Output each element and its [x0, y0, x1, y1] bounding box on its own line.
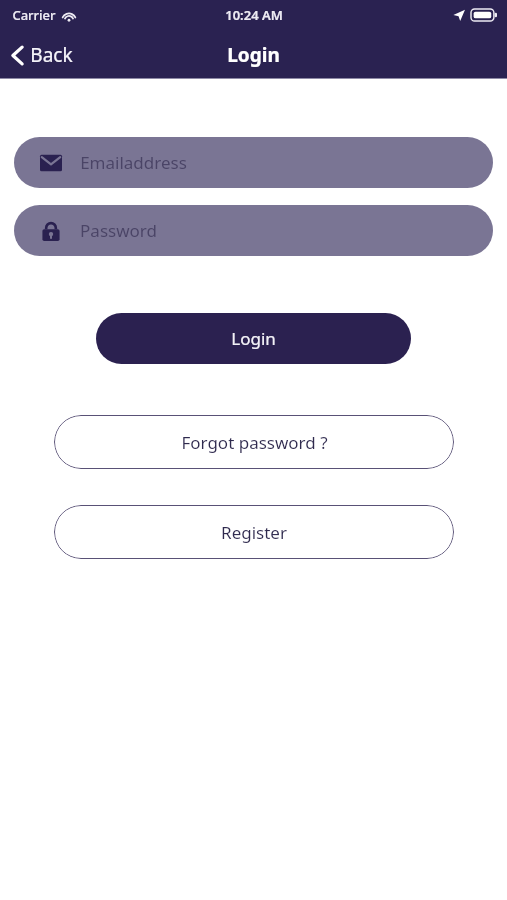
staticText: Password — [80, 219, 157, 242]
other: Email — [40, 152, 62, 174]
button[interactable]: Forgot password ? — [54, 415, 454, 469]
staticText: Carrier — [12, 6, 56, 24]
staticText: Login — [231, 327, 276, 350]
staticText: Forgot password ? — [181, 431, 328, 454]
button[interactable]: Login — [96, 313, 411, 364]
staticText: 10:24 AM — [225, 6, 283, 24]
button[interactable]: Password — [14, 205, 493, 256]
other: Password — [40, 220, 62, 242]
staticText: Emailaddress — [80, 151, 187, 174]
button[interactable]: Email — [14, 137, 493, 188]
button[interactable]: Register — [54, 505, 454, 559]
staticText: Back — [30, 42, 73, 68]
staticText: Register — [221, 521, 287, 544]
staticText: Login — [227, 42, 280, 68]
button[interactable]: Back — [8, 36, 77, 74]
